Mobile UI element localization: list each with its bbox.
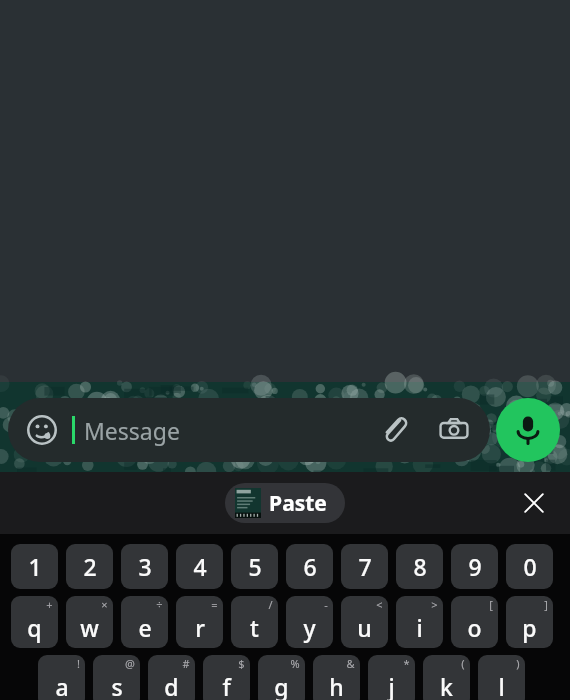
staticText: o	[467, 612, 482, 643]
staticText: f	[222, 671, 231, 700]
staticText: !	[77, 656, 80, 671]
button[interactable]: 8	[396, 544, 443, 589]
button[interactable]: Paste	[225, 483, 345, 523]
staticText: [	[489, 597, 493, 612]
button[interactable]: /	[231, 596, 278, 648]
staticText: Paste	[269, 489, 327, 518]
staticText: t	[250, 612, 259, 643]
button[interactable]: -	[286, 596, 333, 648]
button[interactable]: 1	[11, 544, 58, 589]
button[interactable]: >	[396, 596, 443, 648]
staticText: %	[290, 656, 300, 671]
staticText: 0	[523, 551, 537, 582]
staticText: g	[274, 671, 289, 700]
button[interactable]: *	[368, 655, 415, 700]
button[interactable]: Camera	[432, 408, 476, 452]
staticText: /	[268, 597, 273, 612]
staticText: ×	[101, 597, 108, 612]
staticText: 5	[248, 551, 262, 582]
staticText: )	[516, 656, 520, 671]
staticText: p	[522, 612, 537, 643]
button[interactable]: +	[11, 596, 58, 648]
button[interactable]: @	[93, 655, 140, 700]
staticText: 6	[303, 551, 317, 582]
staticText: Message	[84, 415, 180, 446]
button[interactable]: 2	[66, 544, 113, 589]
staticText: r	[195, 612, 205, 643]
button[interactable]: (	[423, 655, 470, 700]
staticText: 8	[413, 551, 427, 582]
button[interactable]: Emoji and stickers	[8, 398, 490, 462]
button[interactable]: ×	[66, 596, 113, 648]
staticText: 7	[358, 551, 372, 582]
button[interactable]: Attach	[372, 408, 416, 452]
staticText: e	[138, 612, 152, 643]
staticText: -	[324, 597, 328, 612]
button[interactable]: &	[313, 655, 360, 700]
staticText: l	[498, 671, 505, 700]
staticText: >	[431, 597, 438, 612]
staticText: 9	[468, 551, 482, 582]
staticText: <	[376, 597, 383, 612]
staticText: +	[46, 597, 53, 612]
button[interactable]: 3	[121, 544, 168, 589]
button[interactable]: ÷	[121, 596, 168, 648]
staticText: &	[346, 656, 355, 671]
staticText: =	[211, 597, 218, 612]
staticText: ÷	[156, 597, 163, 612]
staticText: (	[461, 656, 465, 671]
staticText: @	[125, 656, 135, 671]
button[interactable]: %	[258, 655, 305, 700]
button[interactable]: 7	[341, 544, 388, 589]
button[interactable]: $	[203, 655, 250, 700]
button[interactable]: Record voice message	[496, 398, 560, 462]
button[interactable]: [	[451, 596, 498, 648]
staticText: u	[357, 612, 372, 643]
button[interactable]: )	[478, 655, 525, 700]
staticText: 1	[28, 551, 42, 582]
staticText: *	[403, 656, 410, 671]
staticText: h	[329, 671, 344, 700]
staticText: q	[27, 612, 42, 643]
staticText: s	[111, 671, 123, 700]
staticText: $	[238, 656, 245, 671]
staticText: k	[440, 671, 453, 700]
staticText: 3	[138, 551, 152, 582]
button[interactable]: 5	[231, 544, 278, 589]
button[interactable]: !	[38, 655, 85, 700]
button[interactable]: ]	[506, 596, 553, 648]
button[interactable]: 6	[286, 544, 333, 589]
staticText: w	[80, 612, 99, 643]
staticText: i	[416, 612, 423, 643]
button[interactable]: <	[341, 596, 388, 648]
staticText: 4	[193, 551, 207, 582]
button[interactable]: 0	[506, 544, 553, 589]
button[interactable]: =	[176, 596, 223, 648]
staticText: #	[182, 656, 190, 671]
staticText: j	[388, 671, 395, 700]
button[interactable]: Emoji and stickers	[22, 410, 62, 450]
button[interactable]: #	[148, 655, 195, 700]
button[interactable]: 4	[176, 544, 223, 589]
staticText: 2	[83, 551, 97, 582]
staticText: y	[303, 612, 316, 643]
staticText: ]	[544, 597, 548, 612]
staticText: d	[164, 671, 179, 700]
button[interactable]: 9	[451, 544, 498, 589]
button[interactable]: Close	[512, 481, 556, 525]
staticText: a	[55, 671, 69, 700]
